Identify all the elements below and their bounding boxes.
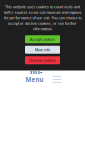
staticText: Menu	[25, 75, 43, 84]
button[interactable]: More info	[25, 46, 60, 54]
staticText: accept or decline cookies, or see furthe…	[8, 21, 77, 26]
staticText: Decline cookies	[29, 58, 56, 63]
button[interactable]: Open menu	[52, 76, 61, 83]
button[interactable]: Accept cookies	[25, 35, 60, 43]
staticText: More info	[35, 47, 50, 52]
staticText: Accept cookies	[30, 37, 55, 42]
staticText: the performance of our site. You can cho…	[3, 15, 81, 20]
staticText: information.	[32, 26, 52, 31]
staticText: This website uses cookies to count visit…	[5, 4, 80, 9]
staticText: traffic sources so we can measure and im…	[3, 10, 81, 15]
button[interactable]: Decline cookies	[25, 56, 60, 64]
button[interactable]: Menu	[25, 76, 44, 83]
staticText: ojyypujy	[30, 45, 43, 88]
